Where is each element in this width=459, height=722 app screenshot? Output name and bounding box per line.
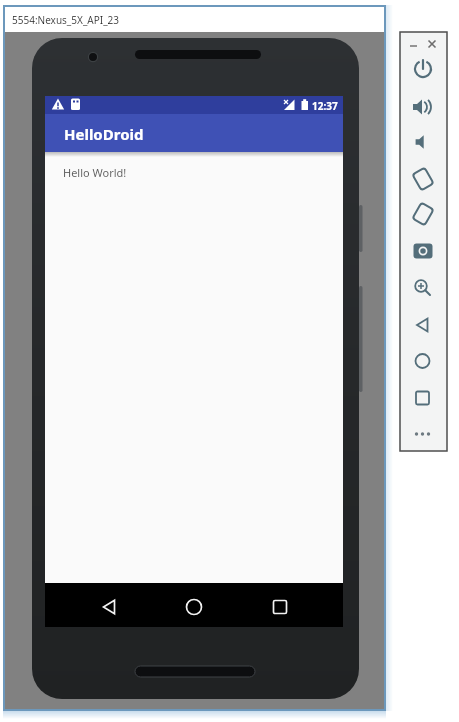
button[interactable]	[404, 312, 442, 342]
staticText: 5554:Nexus_5X_API_23	[12, 13, 120, 27]
button[interactable]	[404, 238, 442, 268]
button[interactable]	[404, 275, 442, 305]
button[interactable]	[5, 7, 384, 32]
button[interactable]	[404, 421, 442, 451]
button[interactable]	[45, 114, 343, 152]
button[interactable]	[404, 129, 442, 159]
button[interactable]	[404, 94, 442, 124]
button[interactable]	[404, 57, 442, 87]
button[interactable]	[404, 385, 442, 415]
staticText: HelloDroid	[64, 124, 144, 144]
button[interactable]	[266, 594, 292, 620]
button[interactable]	[404, 201, 442, 231]
staticText: Hello World!	[63, 165, 127, 180]
button[interactable]	[404, 348, 442, 378]
button[interactable]	[96, 594, 122, 620]
button[interactable]	[404, 166, 442, 196]
staticText: 12:37	[312, 99, 338, 113]
button[interactable]	[181, 594, 207, 620]
